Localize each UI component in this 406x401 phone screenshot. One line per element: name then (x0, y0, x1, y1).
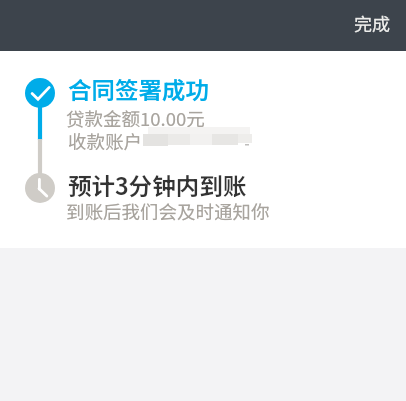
button[interactable] (0, 161, 406, 223)
staticText: 合同签署成功 (68, 72, 209, 106)
button[interactable] (0, 65, 406, 153)
staticText: 完成 (354, 10, 390, 36)
other: Progress timeline (0, 51, 406, 248)
staticText: 收款账户 (68, 128, 143, 155)
button[interactable]: 完成 (334, 0, 406, 48)
other: Account number hidden (0, 51, 406, 248)
staticText: 预计3分钟内到账 (68, 168, 247, 202)
staticText: 到账后我们会及时通知你 (66, 198, 270, 225)
staticText: 贷款金额10.00元 (66, 105, 205, 132)
